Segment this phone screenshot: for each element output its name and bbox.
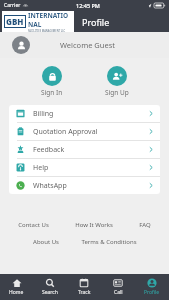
staticText: 12:45 PM (76, 2, 100, 9)
staticText: FACILITIES MANAGEMENT LLC (28, 29, 66, 32)
staticText: Sign Up (105, 88, 129, 97)
staticText: INTERNATIONAL (28, 11, 72, 29)
button[interactable]: Terms & Conditions (79, 237, 139, 247)
button[interactable]: Sign Up (99, 65, 135, 98)
button[interactable]: About Us (31, 237, 61, 247)
staticText: Call (114, 289, 123, 296)
staticText: WhatsApp (33, 181, 67, 191)
staticText: Terms & Conditions (81, 238, 137, 246)
button[interactable]: Welcome Guest (0, 32, 169, 58)
button[interactable]: Quotation Approval (9, 123, 160, 140)
staticText: Quotation Approval (33, 127, 98, 137)
button[interactable]: GBH International logo (2, 11, 74, 32)
staticText: Sign In (41, 88, 63, 97)
staticText: GBH (6, 16, 24, 27)
staticText: Profile (82, 16, 110, 28)
staticText: Search (42, 289, 58, 296)
button[interactable]: Track (67, 274, 101, 300)
staticText: How It Works (75, 221, 113, 229)
button[interactable]: Home (0, 274, 33, 300)
button[interactable]: Help (9, 159, 160, 176)
button[interactable]: Sign In (35, 65, 69, 98)
staticText: Profile (144, 289, 160, 296)
staticText: Feedback (33, 145, 65, 155)
button[interactable]: Search (33, 274, 67, 300)
button[interactable]: Call (101, 274, 135, 300)
staticText: Billing (33, 109, 54, 119)
staticText: Home (9, 289, 24, 296)
staticText: FAQ (139, 221, 151, 229)
button[interactable]: FAQ (137, 220, 153, 230)
button[interactable]: WhatsApp (9, 177, 160, 194)
button[interactable]: Profile (135, 274, 169, 300)
button[interactable]: How It Works (73, 220, 115, 230)
staticText: Welcome Guest (60, 40, 115, 50)
staticText: Contact Us (18, 221, 49, 229)
button[interactable]: Contact Us (16, 220, 51, 230)
staticText: About Us (33, 238, 59, 246)
button[interactable]: Billing (9, 105, 160, 122)
button[interactable]: Feedback (9, 141, 160, 158)
staticText: Help (33, 163, 49, 173)
staticText: Track (78, 289, 91, 296)
staticText: Carrier (4, 2, 21, 9)
